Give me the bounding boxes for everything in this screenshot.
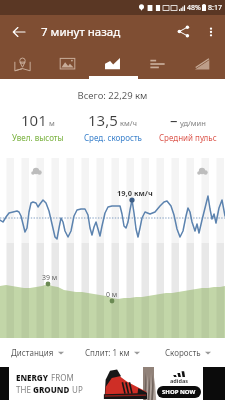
button[interactable]: – [150,110,225,143]
staticText: adidas [170,377,188,384]
staticText: 7 минут назад [41,24,121,40]
staticText: Увел. высоты [12,132,64,143]
staticText: 48% [187,3,201,13]
staticText: FROM [49,372,74,383]
staticText: Сред. скорость [84,132,142,143]
button[interactable]: Сплит: 1 км [74,338,151,367]
staticText: Скорость [165,347,201,358]
staticText: ENERGY [16,372,49,383]
staticText: уд/мин [180,118,206,128]
staticText: 19,0 км/ч [117,188,153,198]
button[interactable]: More options [197,15,225,46]
staticText: Всего: 22,29 км [0,89,225,102]
button[interactable]: Map [0,46,45,79]
staticText: км/ч [120,118,137,128]
staticText: Средний пульс [159,132,217,143]
button[interactable]: Charts [90,46,135,79]
staticText: Сплит: 1 км [85,347,130,358]
staticText: UP [70,384,83,395]
button[interactable]: Back [0,15,35,46]
staticText: 101 [21,110,47,130]
button[interactable]: Photos [45,46,90,79]
button[interactable]: Elevation [180,46,225,79]
button[interactable]: 13,5 [75,110,150,143]
staticText: 8:17 [208,3,222,13]
staticText: м [49,118,55,128]
button[interactable]: 101 [0,110,75,143]
staticText: 0 м [106,290,118,300]
button[interactable]: SHOP NOW [157,386,201,398]
button[interactable]: Скорость [151,338,225,367]
staticText: SHOP NOW [162,388,196,396]
staticText: THE [16,384,33,395]
staticText: – [170,110,178,130]
button[interactable]: ENERGY [0,367,225,400]
button[interactable]: Share [169,15,197,46]
staticText: Дистанция [11,347,54,358]
staticText: 13,5 [88,110,118,130]
staticText: GROUND [33,384,70,395]
button[interactable]: Дистанция [0,338,74,367]
button[interactable]: Splits [135,46,180,79]
staticText: 39 м [42,273,58,283]
